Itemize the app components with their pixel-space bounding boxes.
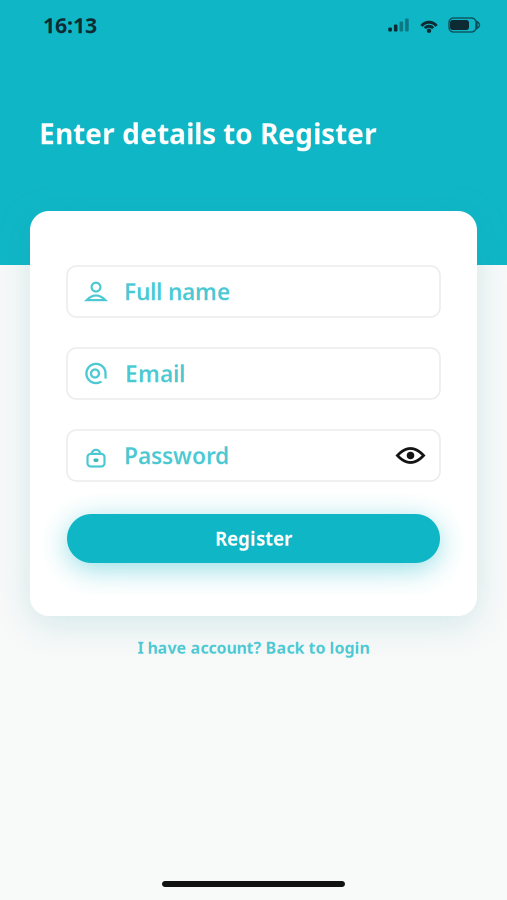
staticText: 16:13 [43,11,97,39]
button[interactable]: Show password [388,446,425,464]
staticText: Enter details to Register [39,115,377,152]
button[interactable]: Register [67,514,440,563]
staticText: Register [215,526,292,551]
staticText: Full name [124,276,230,306]
button[interactable]: I have account? Back to login [117,616,389,666]
button[interactable]: Full name [67,266,440,317]
staticText: Password [124,440,229,470]
staticText: Email [125,358,185,388]
staticText: I have account? Back to login [137,637,369,658]
button[interactable]: Email [67,348,440,399]
button[interactable]: Password [67,430,440,481]
